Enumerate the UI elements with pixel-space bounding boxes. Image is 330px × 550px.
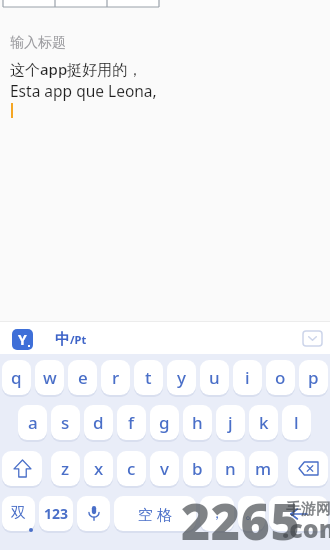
button[interactable] bbox=[2, 451, 42, 486]
staticText: 双 bbox=[11, 504, 26, 523]
staticText: t bbox=[145, 366, 152, 389]
staticText: p bbox=[308, 366, 319, 389]
button[interactable] bbox=[288, 451, 328, 486]
button[interactable]: Y bbox=[12, 329, 33, 350]
button[interactable]: b bbox=[183, 451, 212, 486]
staticText: 。 bbox=[245, 505, 259, 523]
button[interactable] bbox=[303, 331, 322, 346]
staticText: c bbox=[127, 457, 136, 480]
button[interactable]: g bbox=[150, 405, 179, 440]
staticText: r bbox=[112, 366, 120, 389]
button[interactable]: 双 bbox=[2, 496, 35, 531]
staticText: f bbox=[128, 411, 135, 434]
staticText: v bbox=[160, 457, 169, 480]
staticText: a bbox=[28, 411, 38, 434]
button[interactable]: a bbox=[18, 405, 47, 440]
staticText: y bbox=[177, 366, 186, 389]
button[interactable]: 空 格 bbox=[114, 496, 196, 531]
staticText: u bbox=[209, 366, 220, 389]
staticText: g bbox=[159, 411, 170, 434]
staticText: w bbox=[43, 366, 57, 389]
button[interactable]: c bbox=[117, 451, 146, 486]
button[interactable]: m bbox=[249, 451, 278, 486]
button[interactable]: h bbox=[183, 405, 212, 440]
staticText: k bbox=[259, 411, 269, 434]
staticText: e bbox=[78, 366, 88, 389]
button[interactable]: w bbox=[35, 360, 64, 395]
staticText: 这个app挺好用的， bbox=[10, 59, 143, 79]
button[interactable]: o bbox=[266, 360, 295, 395]
staticText: .com bbox=[282, 511, 330, 545]
button[interactable]: 中 bbox=[55, 330, 87, 349]
staticText: z bbox=[61, 457, 70, 480]
button[interactable]: 。 bbox=[238, 496, 265, 531]
staticText: i bbox=[245, 366, 250, 389]
staticText: 中 bbox=[55, 330, 70, 349]
staticText: j bbox=[228, 411, 233, 434]
button[interactable]: t bbox=[134, 360, 163, 395]
staticText: 123 bbox=[44, 504, 69, 523]
button[interactable] bbox=[269, 496, 328, 531]
staticText: l bbox=[294, 411, 299, 434]
staticText: Y bbox=[18, 330, 27, 349]
staticText: o bbox=[275, 366, 286, 389]
button[interactable]: q bbox=[2, 360, 31, 395]
staticText: x bbox=[94, 457, 104, 480]
button[interactable]: f bbox=[117, 405, 146, 440]
button[interactable]: u bbox=[200, 360, 229, 395]
staticText: 手游网 bbox=[286, 500, 330, 519]
staticText: /Pt bbox=[70, 332, 87, 347]
button[interactable]: z bbox=[51, 451, 80, 486]
button[interactable]: d bbox=[84, 405, 113, 440]
button[interactable]: k bbox=[249, 405, 278, 440]
button[interactable]: j bbox=[216, 405, 245, 440]
staticText: ， bbox=[210, 505, 224, 523]
button[interactable]: r bbox=[101, 360, 130, 395]
button[interactable]: x bbox=[84, 451, 113, 486]
button[interactable]: i bbox=[233, 360, 262, 395]
staticText: n bbox=[225, 457, 236, 480]
button[interactable]: 123 bbox=[39, 496, 73, 531]
staticText: b bbox=[192, 457, 203, 480]
staticText: h bbox=[192, 411, 203, 434]
button[interactable]: e bbox=[68, 360, 97, 395]
button[interactable]: s bbox=[51, 405, 80, 440]
staticText: d bbox=[93, 411, 104, 434]
button[interactable]: p bbox=[299, 360, 328, 395]
staticText: 2265 bbox=[181, 487, 301, 550]
button[interactable]: ， bbox=[200, 496, 234, 531]
button[interactable]: v bbox=[150, 451, 179, 486]
staticText: 输入标题 bbox=[10, 34, 66, 52]
staticText: 空 格 bbox=[138, 504, 172, 524]
staticText: q bbox=[11, 366, 22, 389]
staticText: s bbox=[61, 411, 70, 434]
button[interactable]: l bbox=[282, 405, 311, 440]
button[interactable]: n bbox=[216, 451, 245, 486]
button[interactable]: y bbox=[167, 360, 196, 395]
button[interactable] bbox=[77, 496, 110, 531]
staticText: Esta app que Leona, bbox=[10, 80, 157, 101]
staticText: m bbox=[255, 457, 272, 480]
